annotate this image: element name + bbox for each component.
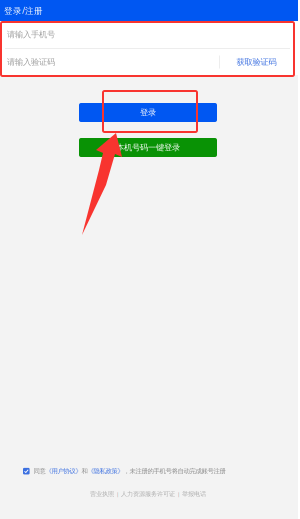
button[interactable]: 营业执照 | 人力资源服务许可证 | 举报电话 <box>90 490 206 498</box>
staticText: 请输入手机号 <box>7 29 55 40</box>
staticText: 获取验证码 <box>236 57 276 67</box>
staticText: ，未注册的手机号将自动完成账号注册 <box>124 467 226 475</box>
staticText: 《隐私政策》 <box>88 467 124 475</box>
staticText: 登录 <box>140 107 156 118</box>
staticText: 本机号码一键登录 <box>116 142 180 153</box>
staticText: 同意 <box>34 467 46 475</box>
staticText: 《用户协议》 <box>46 467 82 475</box>
staticText: 和 <box>82 467 88 475</box>
button[interactable]: 《隐私政策》 <box>88 467 124 475</box>
staticText: 请输入验证码 <box>7 57 55 67</box>
button[interactable]: 请输入验证码 <box>0 49 219 75</box>
button[interactable]: 《用户协议》 <box>46 467 82 475</box>
staticText: 登录/注册 <box>4 5 43 16</box>
staticText: 营业执照 | 人力资源服务许可证 | 举报电话 <box>90 490 206 498</box>
button[interactable]: Agree to terms <box>23 468 30 474</box>
button[interactable]: 登录 <box>79 103 217 122</box>
button[interactable]: 本机号码一键登录 <box>79 138 217 157</box>
button[interactable]: 获取验证码 <box>220 49 293 75</box>
button[interactable]: 请输入手机号 <box>0 21 298 48</box>
